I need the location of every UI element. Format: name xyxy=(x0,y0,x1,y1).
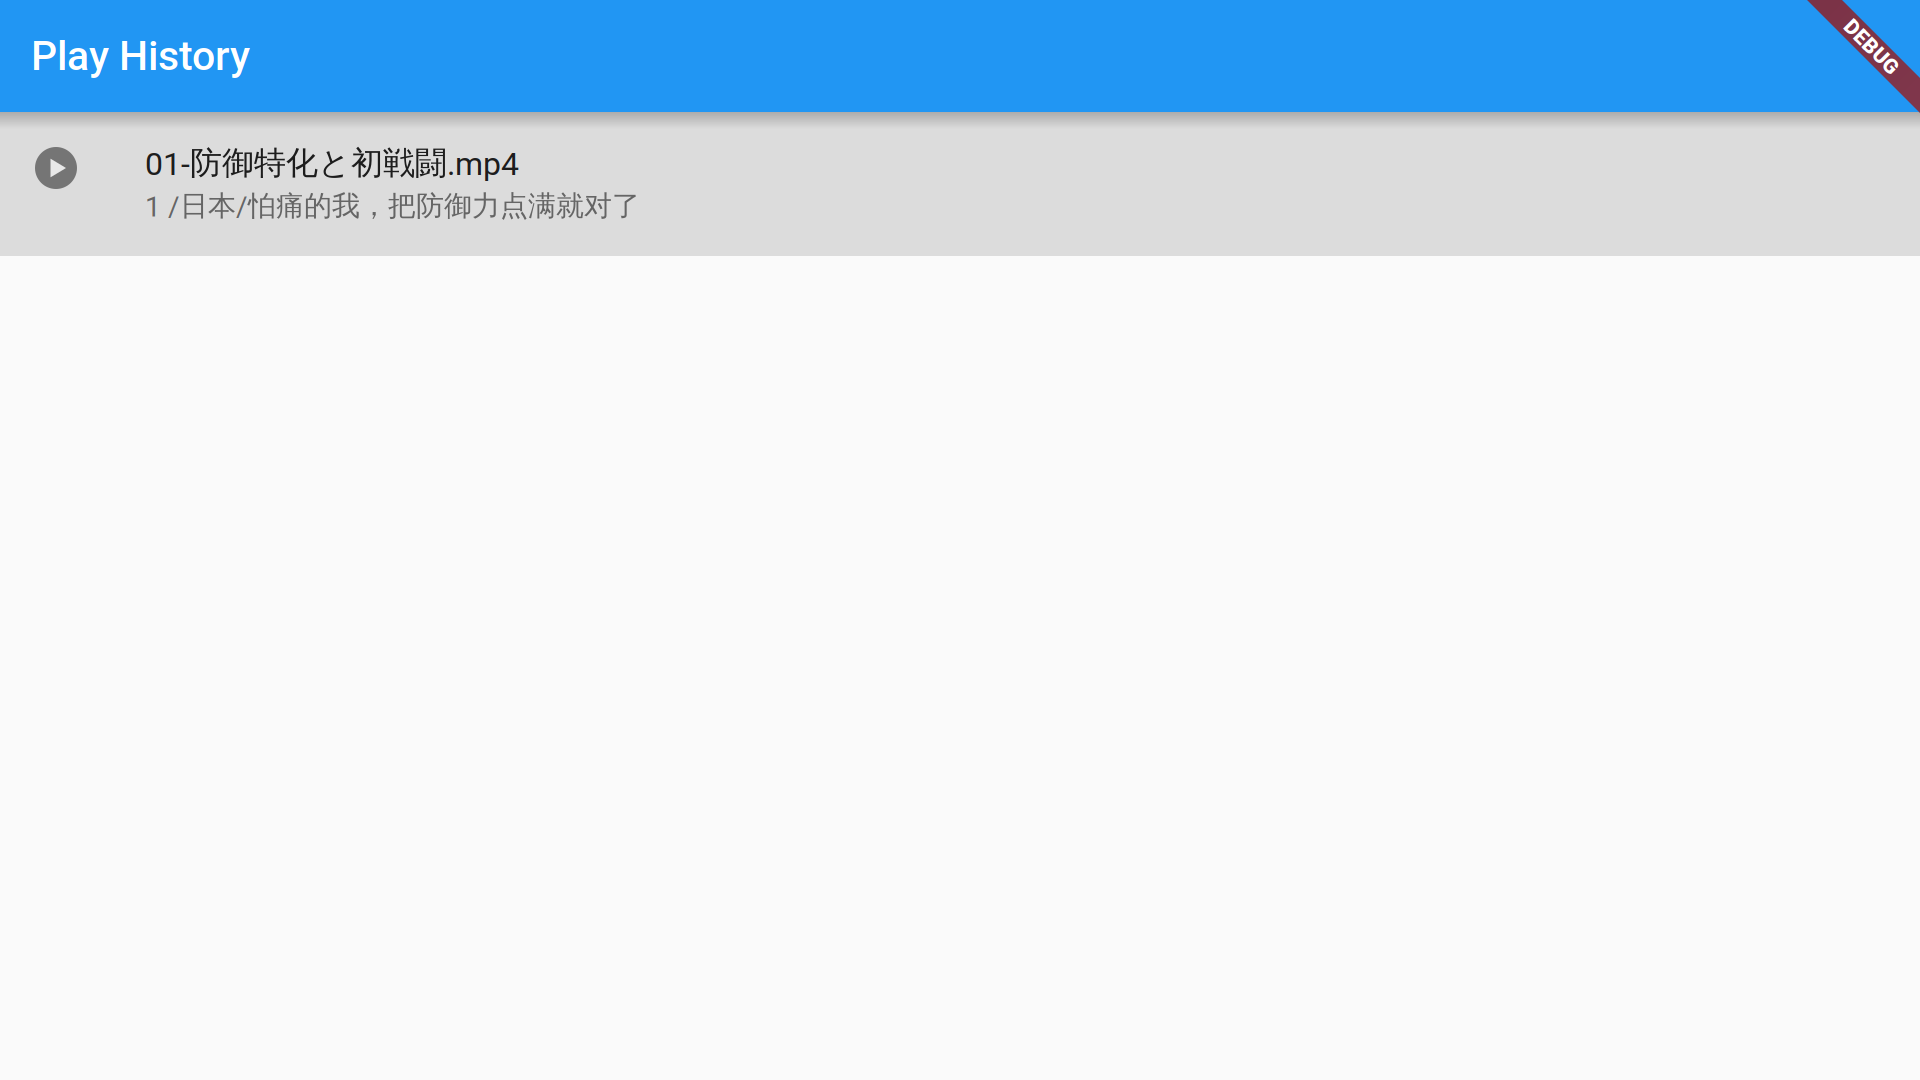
staticText: Play History xyxy=(31,32,250,80)
staticText: 01-防御特化と初戦闘.mp4 xyxy=(145,143,519,183)
staticText: 1 /日本/怕痛的我，把防御力点满就对了 xyxy=(145,188,640,224)
staticText: DEBUG xyxy=(1837,34,1905,59)
button[interactable]: 01-防御特化と初戦闘.mp4 xyxy=(0,112,1920,256)
